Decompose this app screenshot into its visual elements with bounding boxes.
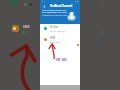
staticText: SMS (50, 36, 56, 40)
staticText: PAY SMS (56, 58, 67, 62)
button[interactable]: Online (40, 24, 80, 33)
staticText: SMS (23, 25, 30, 29)
button[interactable]: Back (42, 4, 46, 8)
staticText: NetBoot Channel (50, 4, 73, 8)
staticText: Get instant alerts for (42, 8, 67, 11)
staticText: all messages on your (42, 10, 67, 13)
staticText: NetBoot channel now (42, 13, 68, 16)
staticText: Receive (52, 41, 60, 44)
staticText: Online (50, 25, 59, 29)
staticText: 11 (27, 31, 30, 35)
staticText: Tap to connect (50, 30, 66, 33)
button[interactable]: SMS (40, 35, 80, 44)
